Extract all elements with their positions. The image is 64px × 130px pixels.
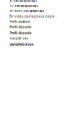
staticText: Profil düzenle [9,25,31,29]
staticText: Profil düzenle [9,20,30,23]
staticText: Bir video paylaşmaya başla [9,15,54,18]
staticText: Bir video paylaşmaya başla [9,5,37,7]
staticText: @yigitalp.kaya [9,42,33,46]
staticText: Profil düzenle [9,31,31,35]
staticText: Biyografi ekle [9,37,28,40]
staticText: Bir video paylaşmaya başla [9,9,43,13]
staticText: Bir video paylaşmaya başla [9,0,36,3]
